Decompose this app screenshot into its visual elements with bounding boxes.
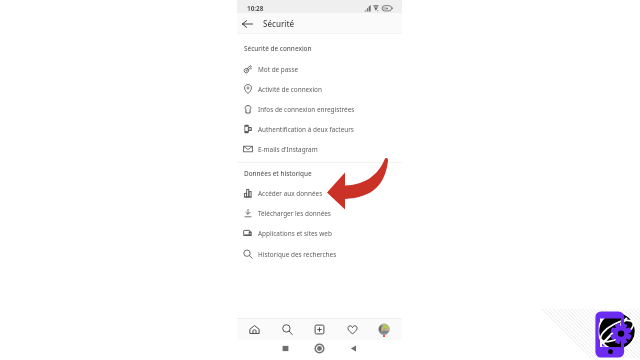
staticText: Télécharger les données	[258, 209, 331, 218]
button[interactable]: Home	[309, 340, 329, 357]
button[interactable]: Back	[240, 15, 255, 32]
staticText: Authentification à deux facteurs	[258, 125, 354, 134]
button[interactable]: Profile	[376, 319, 392, 340]
staticText: E-mails d'Instagram	[258, 145, 318, 154]
button[interactable]: Infos de connexion enregistrées	[237, 99, 402, 119]
button[interactable]: Télécharger les données	[237, 203, 402, 223]
staticText: Sécurité de connexion	[244, 44, 312, 53]
staticText: Infos de connexion enregistrées	[258, 105, 355, 114]
staticText: Mot de passe	[258, 65, 299, 74]
button[interactable]: Back	[343, 340, 363, 357]
staticText: Données et historique	[244, 169, 312, 178]
button[interactable]: Search	[279, 319, 295, 340]
staticText: 10:28	[247, 4, 264, 13]
button[interactable]: Authentification à deux facteurs	[237, 119, 402, 139]
button[interactable]: Activity	[344, 319, 360, 340]
button[interactable]: Home	[246, 319, 262, 340]
staticText: Applications et sites web	[258, 229, 332, 238]
staticText: Historique des recherches	[258, 250, 337, 259]
button[interactable]: Create	[311, 319, 327, 340]
button[interactable]: E-mails d'Instagram	[237, 139, 402, 159]
button[interactable]: Activité de connexion	[237, 79, 402, 99]
staticText: Sécurité	[263, 18, 295, 29]
button[interactable]: Accéder aux données	[237, 183, 402, 203]
button[interactable]: Applications et sites web	[237, 223, 402, 243]
button[interactable]: Historique des recherches	[237, 244, 402, 264]
staticText: Accéder aux données	[258, 189, 323, 198]
button[interactable]: Mot de passe	[237, 59, 402, 79]
staticText: Activité de connexion	[258, 85, 322, 94]
button[interactable]: Recent apps	[275, 340, 295, 357]
